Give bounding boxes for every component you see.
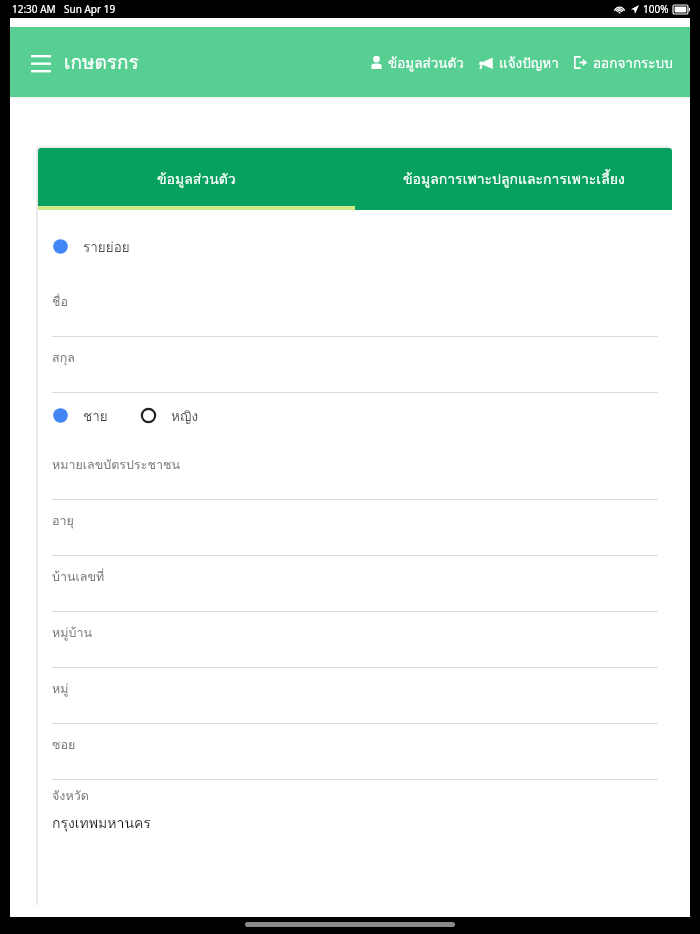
staticText: ข้อมูลส่วนตัว <box>157 168 236 190</box>
button[interactable]: Menu <box>27 43 143 81</box>
staticText: แจ้งปัญหา <box>499 52 559 73</box>
staticText: หมายเลขบัตรประชาชน <box>52 455 180 475</box>
button[interactable]: ชื่อ <box>52 282 658 338</box>
button[interactable]: สกุล <box>52 338 658 394</box>
staticText: บ้านเลขที่ <box>52 567 105 587</box>
staticText: เกษตรกร <box>64 47 139 77</box>
button[interactable]: หญิง <box>140 402 198 429</box>
button[interactable]: อายุ <box>52 501 658 557</box>
staticText: สกุล <box>52 348 75 368</box>
button[interactable]: หมู่บ้าน <box>52 613 658 669</box>
staticText: 100% <box>643 2 669 16</box>
staticText: ข้อมูลการเพาะปลูกและการเพาะเลี้ยง <box>403 168 625 190</box>
staticText: จังหวัด <box>52 786 89 806</box>
button[interactable]: ข้อมูลการเพาะปลูกและการเพาะเลี้ยง <box>355 148 672 210</box>
staticText: กรุงเทพมหานคร <box>52 812 151 834</box>
staticText: หมู่บ้าน <box>52 623 92 643</box>
staticText: รายย่อย <box>83 236 130 257</box>
other: Menu <box>31 55 51 70</box>
staticText: ข้อมูลส่วนตัว <box>388 52 464 73</box>
button[interactable]: ซอย <box>52 725 658 781</box>
button[interactable]: ข้อมูลส่วนตัว <box>38 148 355 210</box>
button[interactable]: ข้อมูลส่วนตัว <box>370 48 465 77</box>
button[interactable]: รายย่อย <box>52 232 130 261</box>
button[interactable]: ออกจากระบบ <box>573 48 674 77</box>
button[interactable]: ชาย <box>52 402 108 429</box>
staticText: หญิง <box>171 405 198 426</box>
staticText: 12:30 AM <box>12 2 56 16</box>
button[interactable]: หมายเลขบัตรประชาชน <box>52 445 658 501</box>
staticText: ออกจากระบบ <box>593 52 673 73</box>
staticText: ซอย <box>52 735 76 755</box>
staticText: อายุ <box>52 511 74 531</box>
staticText: Sun Apr 19 <box>64 2 116 16</box>
button[interactable]: แจ้งปัญหา <box>478 48 560 77</box>
staticText: หมู่ <box>52 679 69 699</box>
button[interactable]: บ้านเลขที่ <box>52 557 658 613</box>
staticText: ชาย <box>83 405 108 426</box>
button[interactable]: หมู่ <box>52 669 658 725</box>
staticText: ชื่อ <box>52 292 68 312</box>
